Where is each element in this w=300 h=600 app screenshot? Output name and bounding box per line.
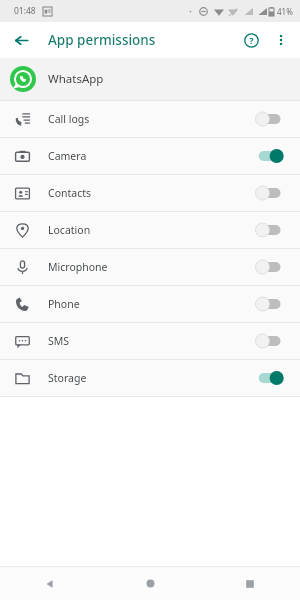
button[interactable]: SMS permission toggle — [254, 328, 288, 354]
staticText: Storage — [48, 371, 254, 385]
staticText: ? — [249, 34, 254, 46]
button[interactable]: Home — [100, 578, 200, 589]
button[interactable]: WhatsApp — [0, 58, 300, 100]
staticText: 01:48 — [14, 5, 36, 17]
button[interactable]: Contacts permission toggle — [254, 180, 288, 206]
button[interactable]: Storage — [0, 360, 300, 396]
button[interactable]: More options — [266, 25, 296, 55]
button[interactable]: Storage permission toggle — [254, 365, 288, 391]
staticText: Call logs — [48, 112, 254, 126]
staticText: Microphone — [48, 260, 254, 274]
button[interactable]: Location — [0, 212, 300, 248]
staticText: Contacts — [48, 186, 254, 200]
staticText: App permissions — [48, 31, 156, 49]
button[interactable]: Recent apps — [200, 579, 300, 589]
staticText: Location — [48, 223, 254, 237]
staticText: Camera — [48, 149, 254, 163]
button[interactable]: Call logs permission toggle — [254, 106, 288, 132]
button[interactable]: Call logs — [0, 101, 300, 137]
button[interactable]: Microphone permission toggle — [254, 254, 288, 280]
button[interactable]: Microphone — [0, 249, 300, 285]
button[interactable]: Camera — [0, 138, 300, 174]
staticText: 41% — [277, 6, 293, 17]
button[interactable]: Phone — [0, 286, 300, 322]
button[interactable]: Phone permission toggle — [254, 291, 288, 317]
button[interactable]: Location permission toggle — [254, 217, 288, 243]
button[interactable]: Contacts — [0, 175, 300, 211]
staticText: SMS — [48, 334, 254, 348]
staticText: Phone — [48, 297, 254, 311]
button[interactable]: Help — [236, 25, 266, 55]
button[interactable]: Camera permission toggle — [254, 143, 288, 169]
button[interactable]: Back — [6, 25, 36, 55]
button[interactable]: Back — [0, 578, 100, 590]
button[interactable]: SMS — [0, 323, 300, 359]
staticText: WhatsApp — [48, 71, 104, 87]
